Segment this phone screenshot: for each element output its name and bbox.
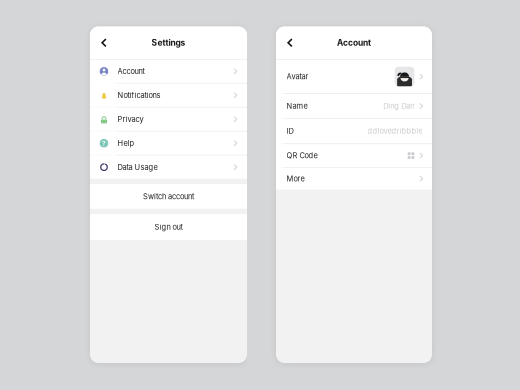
staticText: Help: [118, 139, 135, 148]
staticText: ID: [286, 127, 293, 136]
staticText: Settings: [151, 38, 185, 48]
staticText: Account: [118, 67, 145, 76]
staticText: Notifications: [118, 91, 161, 100]
button[interactable]: Sign out: [90, 214, 247, 240]
button[interactable]: Account: [90, 60, 247, 83]
button[interactable]: ?: [90, 132, 247, 155]
button[interactable]: Back: [95, 34, 113, 52]
button[interactable]: ID: [276, 119, 432, 143]
staticText: QR Code: [286, 151, 317, 160]
staticText: Avatar: [286, 72, 308, 81]
staticText: More: [286, 174, 304, 183]
staticText: Privacy: [118, 115, 144, 124]
button[interactable]: More: [276, 168, 432, 190]
staticText: Data Usage: [118, 163, 158, 172]
button[interactable]: Back: [281, 34, 299, 52]
button[interactable]: Avatar: [276, 60, 432, 93]
button[interactable]: Data Usage: [90, 156, 247, 179]
button[interactable]: Name: [276, 94, 432, 118]
button[interactable]: Privacy: [90, 108, 247, 131]
button[interactable]: QR Code: [276, 144, 432, 167]
staticText: ddlovedribbble: [367, 127, 422, 136]
staticText: Switch account: [143, 192, 194, 201]
button[interactable]: Notifications: [90, 84, 247, 107]
staticText: Ding Dan: [383, 101, 414, 110]
staticText: Name: [286, 101, 307, 110]
staticText: ?: [102, 139, 106, 147]
staticText: Account: [337, 38, 371, 48]
button[interactable]: Switch account: [90, 184, 247, 209]
staticText: Sign out: [154, 222, 182, 231]
